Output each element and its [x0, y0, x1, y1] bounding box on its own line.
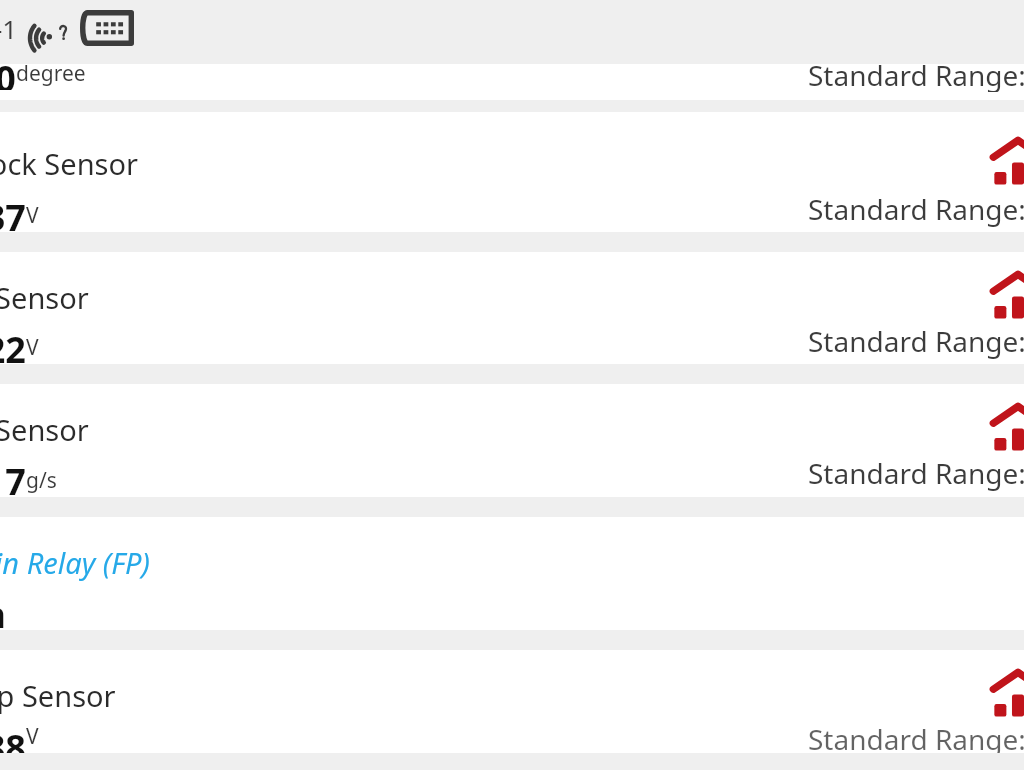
staticText: Standard Range:N/A: [808, 64, 1024, 92]
staticText: Standard Range:N/A: [808, 322, 1024, 360]
button[interactable]: AF Sensor: [0, 252, 1024, 364]
staticText: Standard Range:N/A: [808, 720, 1024, 753]
staticText: V: [26, 333, 39, 362]
staticText: AF Sensor: [0, 278, 89, 317]
staticText: Standard Range:N/A: [808, 454, 1024, 492]
button[interactable]: 100: [0, 64, 1024, 100]
staticText: Knock Sensor: [0, 144, 138, 183]
button[interactable]: Knock Sensor: [0, 112, 1024, 232]
other: Wi-Fi, no internet: [30, 7, 72, 49]
staticText: 1.37: [0, 193, 26, 232]
staticText: 100: [0, 64, 16, 90]
button[interactable]: View graph: [990, 138, 1024, 186]
staticText: Map Sensor: [0, 676, 116, 715]
staticText: Main Relay (FP): [0, 543, 150, 582]
button[interactable]: View graph: [990, 272, 1024, 320]
other: OBD adapter connected: [80, 10, 134, 46]
staticText: 0.88: [0, 723, 26, 753]
staticText: V: [26, 722, 39, 751]
button[interactable]: View graph: [990, 670, 1024, 718]
staticText: g/s: [26, 466, 57, 495]
staticText: -1: [0, 11, 18, 46]
staticText: degree: [16, 64, 86, 88]
button[interactable]: AF Sensor: [0, 384, 1024, 497]
staticText: On: [0, 590, 6, 630]
staticText: V: [26, 201, 39, 230]
staticText: Standard Range:N/A: [808, 190, 1024, 228]
staticText: AF Sensor: [0, 410, 89, 449]
staticText: 2.17: [0, 457, 26, 497]
staticText: 3.22: [0, 325, 26, 364]
button[interactable]: View graph: [990, 404, 1024, 452]
button[interactable]: Main Relay (FP): [0, 517, 1024, 630]
button[interactable]: Map Sensor: [0, 650, 1024, 753]
